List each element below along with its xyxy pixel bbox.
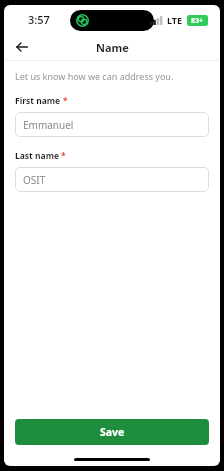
- staticText: 83+: [191, 16, 204, 26]
- staticText: Emmanuel: [23, 118, 74, 132]
- staticText: Name: [96, 40, 129, 55]
- button[interactable]: Save: [15, 419, 209, 445]
- staticText: Save: [100, 425, 125, 439]
- staticText: Let us know how we can address you.: [15, 70, 174, 82]
- staticText: LTE: [167, 14, 183, 26]
- button[interactable]: OSIT: [15, 167, 209, 192]
- button[interactable]: Emmanuel: [15, 112, 209, 137]
- staticText: OSIT: [23, 173, 46, 187]
- staticText: *: [63, 95, 68, 107]
- button[interactable]: Back: [11, 36, 33, 58]
- staticText: First name: [15, 95, 61, 107]
- staticText: Last name: [15, 150, 59, 162]
- staticText: 3:57: [28, 12, 50, 27]
- staticText: *: [61, 150, 66, 162]
